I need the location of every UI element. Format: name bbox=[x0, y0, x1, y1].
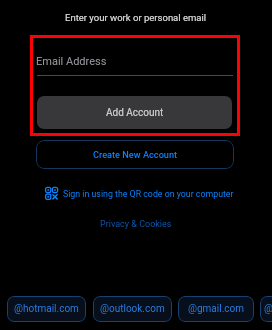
button[interactable]: Privacy & Cookies bbox=[100, 219, 172, 230]
button[interactable]: @gmail.com bbox=[178, 296, 254, 322]
staticText: Add Account bbox=[106, 107, 164, 119]
button[interactable]: @icloud.com bbox=[260, 296, 272, 322]
staticText: @icloud.com bbox=[264, 303, 272, 315]
staticText: @hotmail.com bbox=[14, 303, 79, 315]
staticText: @outlook.com bbox=[100, 303, 165, 315]
staticText: Sign in using the QR code on your comput… bbox=[63, 189, 234, 199]
staticText: @gmail.com bbox=[188, 303, 245, 315]
button[interactable]: Add Account bbox=[37, 96, 232, 129]
button[interactable]: Create New Account bbox=[36, 140, 234, 169]
staticText: Create New Account bbox=[93, 149, 178, 160]
staticText: Email Address bbox=[36, 55, 107, 68]
button[interactable]: @hotmail.com bbox=[7, 296, 86, 322]
staticText: Enter your work or personal email bbox=[65, 12, 207, 23]
button[interactable]: Sign in using the QR code on your comput… bbox=[45, 187, 234, 200]
button[interactable]: @outlook.com bbox=[93, 296, 172, 322]
